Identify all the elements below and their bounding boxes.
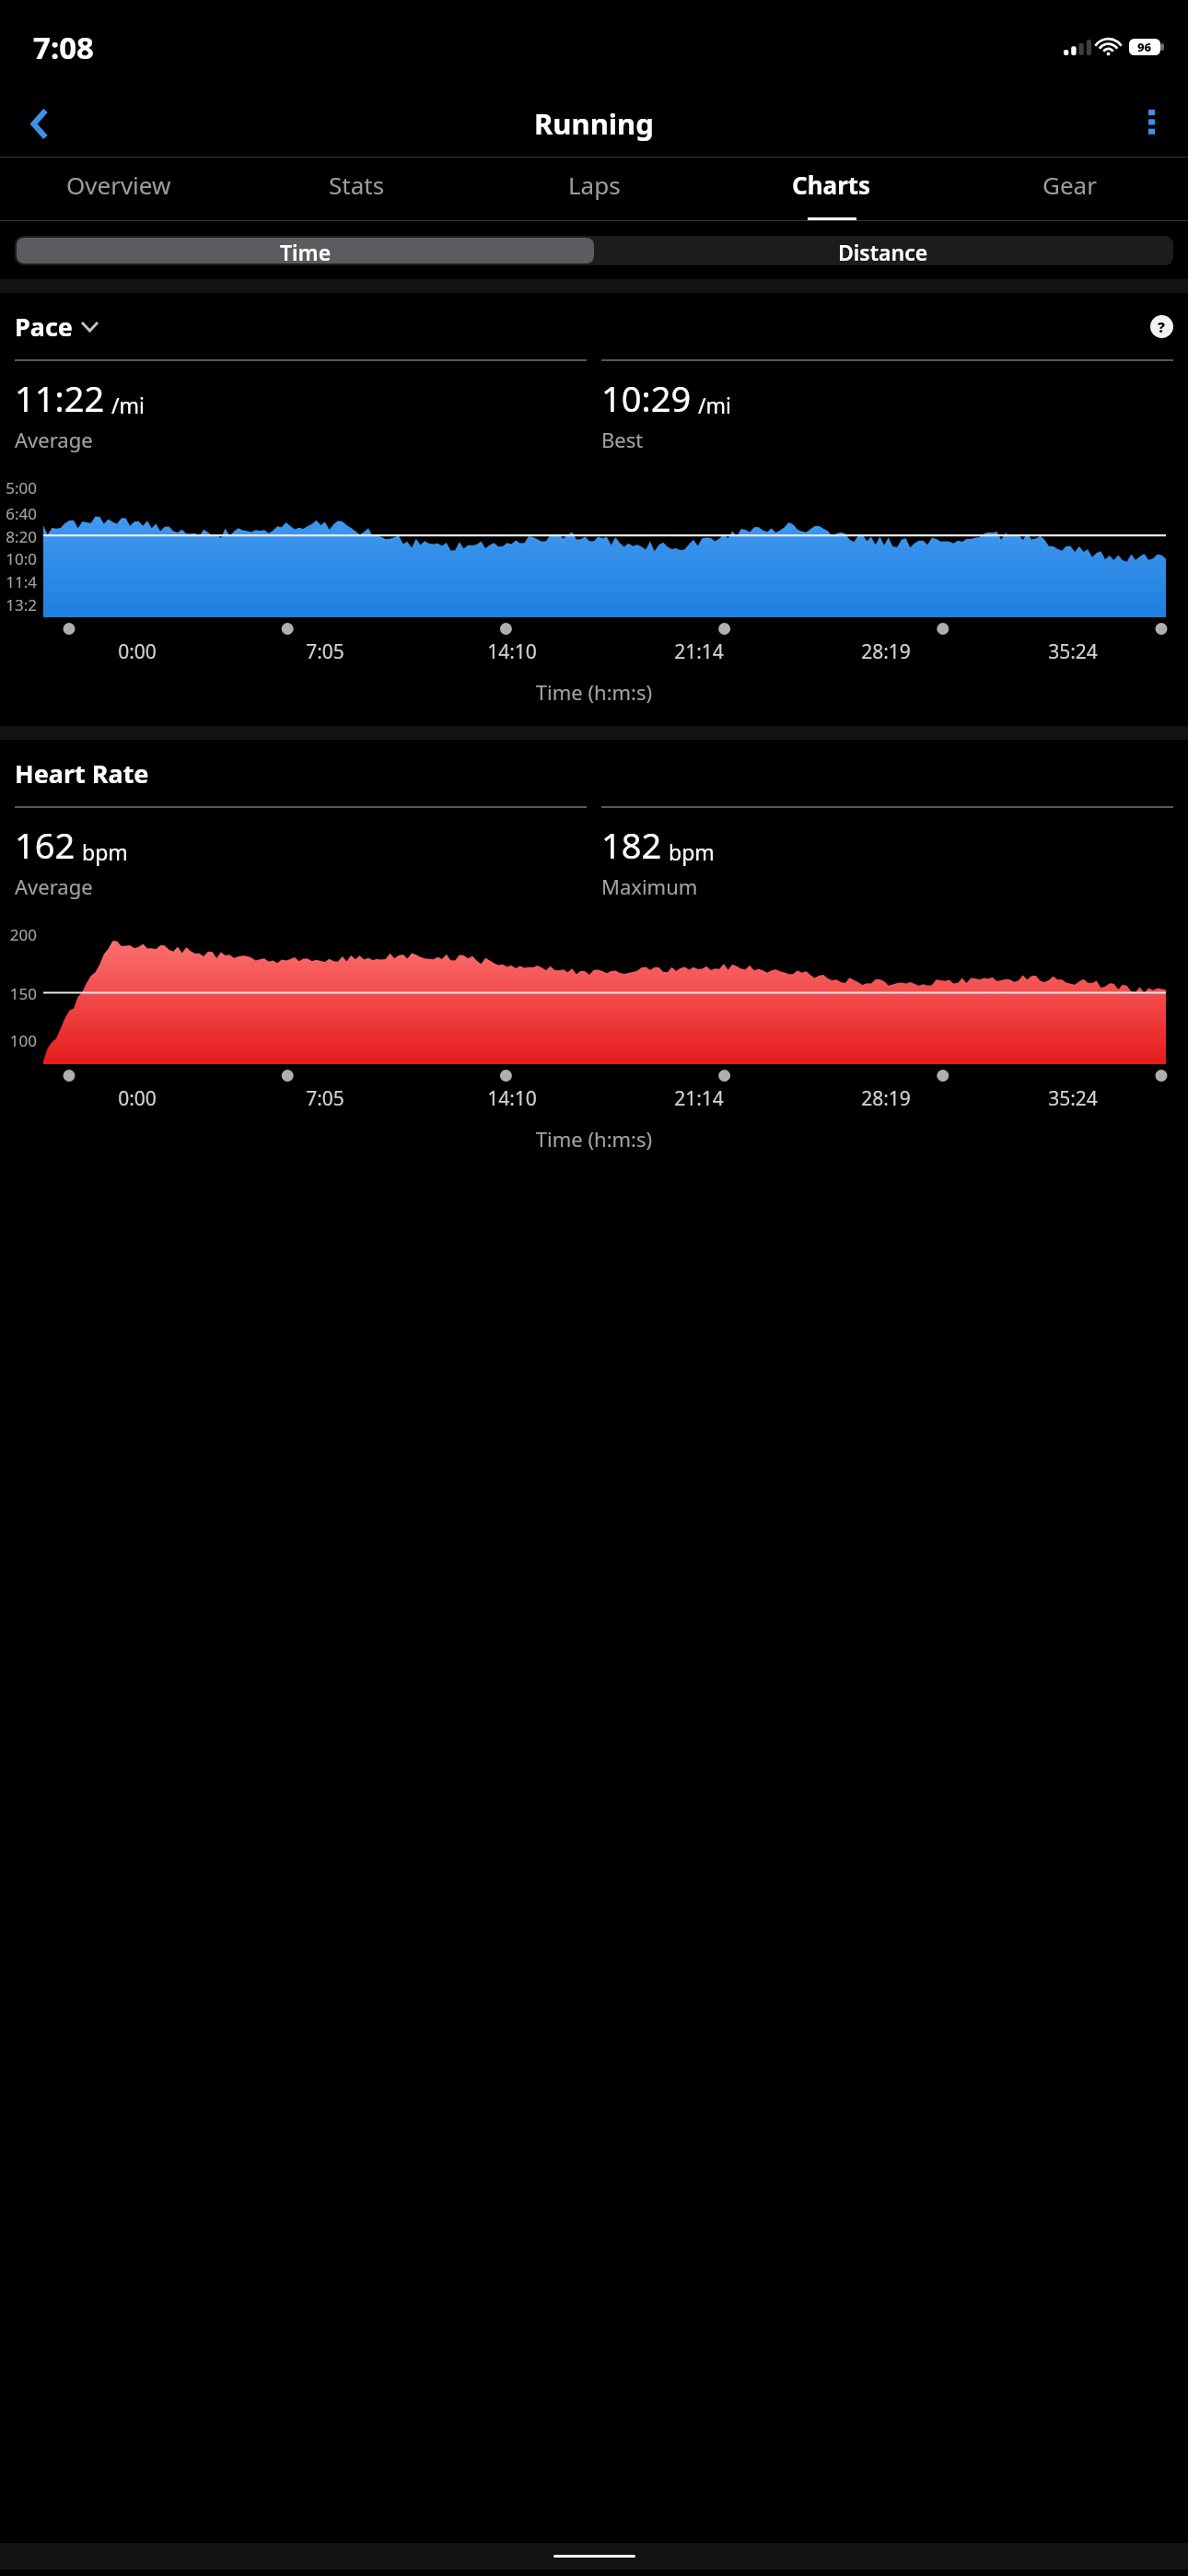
staticText: Average [15, 872, 93, 900]
staticText: Running [534, 104, 654, 143]
staticText: bpm [82, 837, 128, 866]
staticText: Time (h:m:s) [0, 1125, 1188, 1153]
staticText: 13:20 [0, 594, 37, 617]
staticText: 0:00 [118, 638, 157, 665]
button[interactable]: Time [17, 238, 594, 263]
staticText: 96 [1137, 39, 1152, 55]
button[interactable]: Charts [713, 158, 950, 220]
staticText: Pace [15, 310, 73, 344]
button[interactable]: More options [1114, 90, 1188, 157]
staticText: Distance [838, 238, 928, 263]
staticText: Maximum [601, 872, 698, 900]
staticText: Time (h:m:s) [0, 678, 1188, 706]
staticText: 14:10 [487, 1085, 537, 1112]
staticText: 35:24 [1048, 1085, 1098, 1112]
button[interactable]: Stats [238, 158, 475, 220]
staticText: 150 [9, 983, 37, 1004]
button[interactable]: Help [1150, 315, 1173, 338]
staticText: Overview [66, 169, 171, 201]
staticText: 7:08 [33, 27, 94, 68]
staticText: 6:40 [6, 503, 37, 524]
staticText: 28:19 [861, 1085, 911, 1112]
staticText: Laps [568, 169, 621, 201]
staticText: Average [15, 426, 93, 453]
staticText: Gear [1042, 169, 1097, 201]
staticText: ? [1158, 317, 1166, 337]
staticText: 35:24 [1048, 638, 1098, 665]
staticText: 11:40 [0, 571, 37, 594]
staticText: Charts [792, 169, 871, 201]
staticText: /mi [111, 391, 145, 419]
staticText: 200 [9, 924, 37, 945]
staticText: 162 [15, 821, 76, 869]
button[interactable]: Distance [594, 238, 1171, 263]
staticText: 8:20 [6, 526, 37, 547]
staticText: 7:05 [306, 1085, 344, 1112]
staticText: Best [601, 426, 644, 453]
button[interactable]: Gear [950, 158, 1188, 220]
button[interactable]: Pace [15, 310, 98, 344]
staticText: 182 [601, 821, 662, 869]
staticText: 10:00 [0, 548, 37, 571]
staticText: 21:14 [674, 1085, 724, 1112]
staticText: 11:22 [15, 374, 105, 422]
staticText: bpm [669, 837, 715, 866]
staticText: 28:19 [861, 638, 911, 665]
staticText: 21:14 [674, 638, 724, 665]
staticText: /mi [698, 391, 731, 419]
staticText: 0:00 [118, 1085, 157, 1112]
staticText: 100 [9, 1030, 37, 1051]
staticText: 10:29 [601, 374, 692, 422]
button[interactable]: Overview [0, 158, 238, 220]
button[interactable]: Heart Rate [15, 756, 149, 790]
button[interactable]: Back [0, 90, 79, 157]
staticText: 5:00 [6, 477, 37, 498]
button[interactable]: Laps [475, 158, 713, 220]
staticText: Time [280, 238, 332, 263]
staticText: Stats [329, 169, 385, 201]
staticText: Heart Rate [15, 756, 149, 790]
staticText: 7:05 [306, 638, 344, 665]
staticText: 14:10 [487, 638, 537, 665]
